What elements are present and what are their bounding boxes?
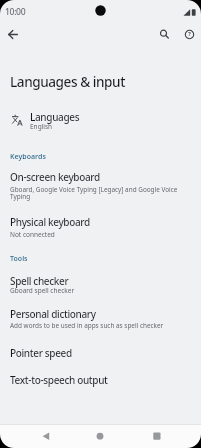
button[interactable] bbox=[149, 428, 165, 444]
button[interactable] bbox=[157, 26, 173, 42]
staticText: 10:00 bbox=[5, 6, 26, 18]
staticText: Keyboards bbox=[10, 152, 46, 162]
staticText: Add words to be used in apps such as spe… bbox=[10, 321, 164, 330]
staticText: Languages & input bbox=[10, 72, 125, 91]
button[interactable]: Text-to-speech output bbox=[0, 368, 201, 390]
button[interactable]: Physical keyboard bbox=[0, 210, 201, 240]
button[interactable] bbox=[92, 428, 108, 444]
staticText: Spell checker bbox=[10, 274, 69, 288]
button[interactable]: Spell checker bbox=[0, 270, 201, 300]
button[interactable]: Personal dictionary bbox=[0, 303, 201, 333]
staticText: Physical keyboard bbox=[10, 215, 90, 229]
staticText: Typing bbox=[10, 192, 31, 201]
button[interactable]: On-screen keyboard bbox=[0, 163, 201, 205]
staticText: Tools bbox=[10, 254, 28, 264]
staticText: Not connected bbox=[10, 230, 55, 239]
staticText: On-screen keyboard bbox=[10, 170, 100, 184]
staticText: ? bbox=[188, 30, 191, 38]
staticText: Gboard spell checker bbox=[10, 286, 75, 295]
button[interactable]: Languages bbox=[0, 104, 201, 136]
button[interactable]: Pointer speed bbox=[0, 341, 201, 363]
button[interactable]: ? bbox=[181, 26, 198, 43]
staticText: Text-to-speech output bbox=[10, 373, 108, 387]
staticText: Languages bbox=[30, 110, 80, 124]
staticText: Gboard, Google Voice Typing [Legacy] and… bbox=[10, 185, 178, 194]
staticText: Personal dictionary bbox=[10, 307, 96, 321]
staticText: Pointer speed bbox=[10, 346, 72, 360]
button[interactable] bbox=[38, 428, 54, 444]
button[interactable] bbox=[5, 26, 22, 43]
staticText: English bbox=[30, 122, 53, 131]
